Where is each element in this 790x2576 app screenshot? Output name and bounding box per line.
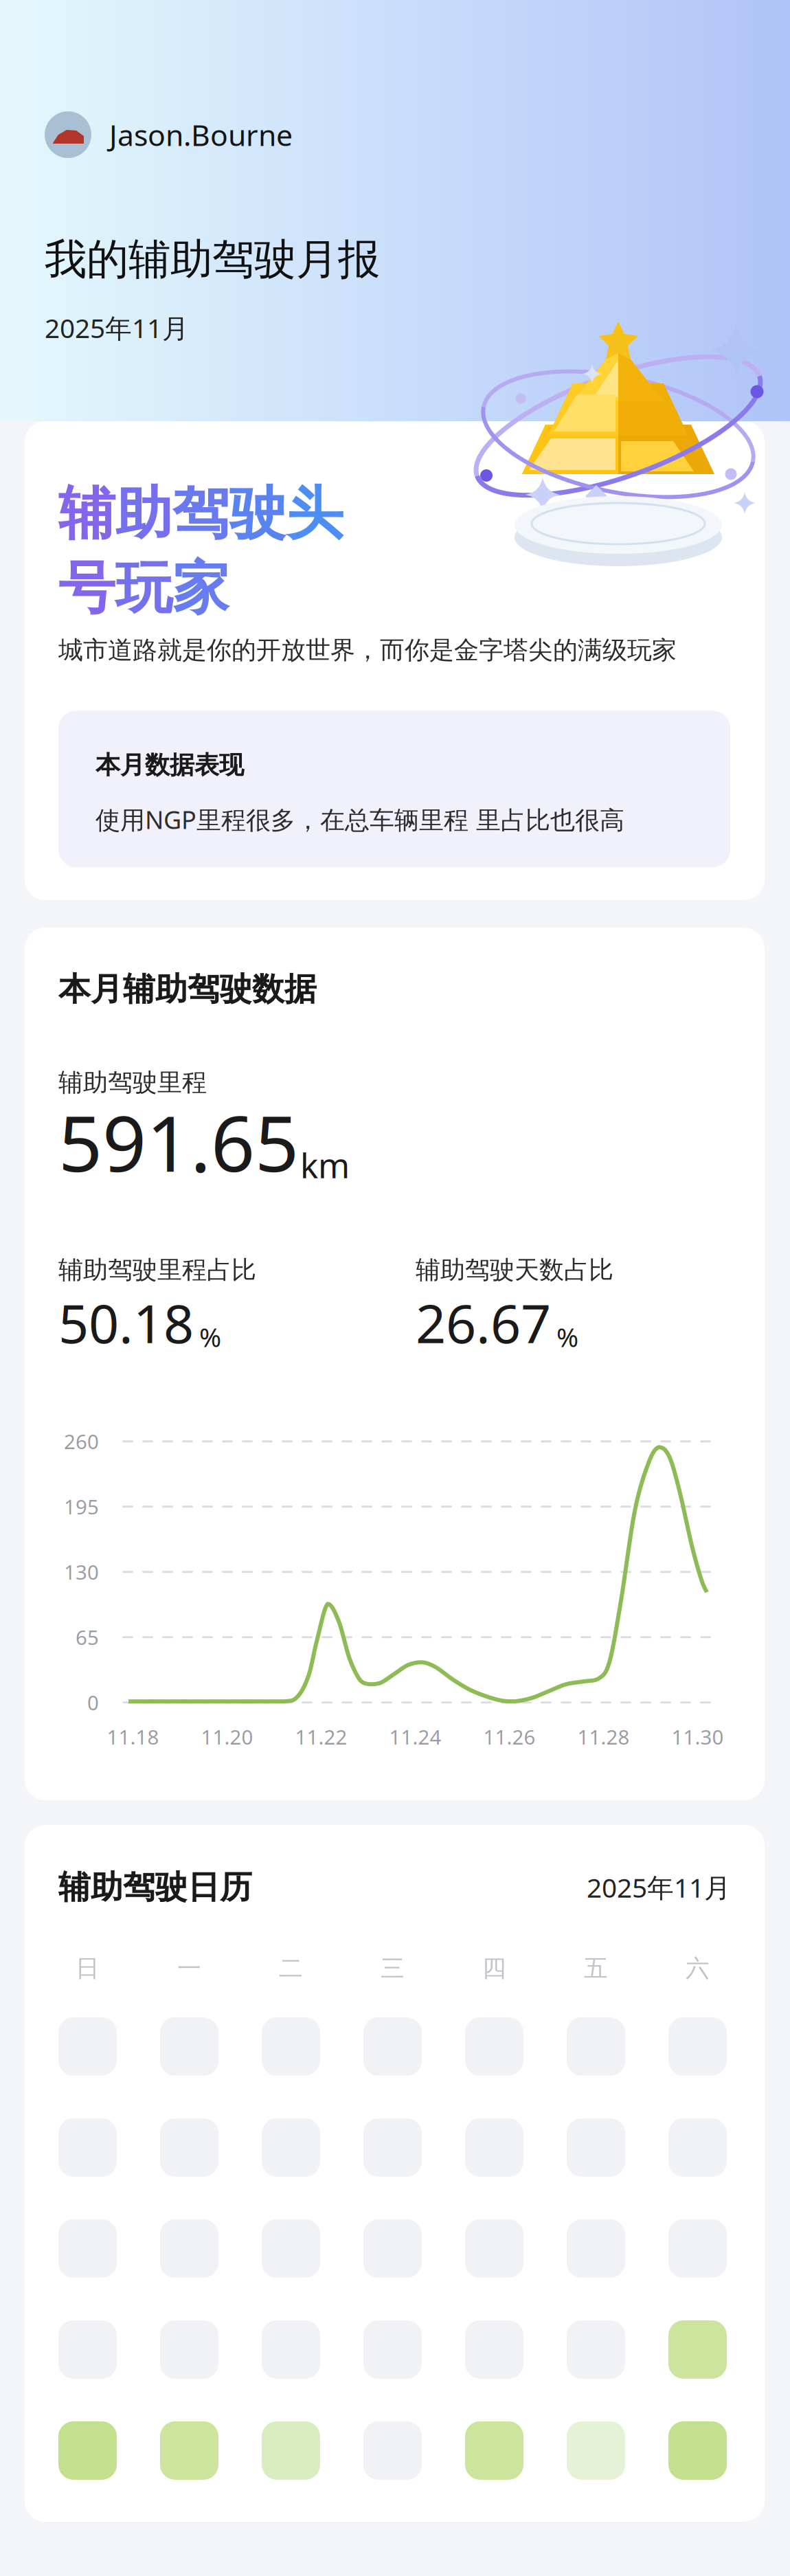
staticText: 城市道路就是你的开放世界，而你是金字塔尖的满级玩家 [58, 635, 677, 665]
staticText: 我的辅助驾驶月报 [45, 234, 380, 285]
staticText: 11.30 [671, 1723, 724, 1750]
staticText: 家 [172, 553, 229, 623]
staticText: 辅 [58, 479, 115, 549]
staticText: 驾 [172, 479, 229, 549]
staticText: 11.28 [577, 1723, 630, 1750]
staticText: 辅助驾驶天数占比 [416, 1255, 613, 1285]
staticText: 玩 [115, 553, 172, 623]
staticText: % [556, 1319, 578, 1354]
staticText: 195 [64, 1493, 99, 1520]
staticText: 0 [87, 1689, 99, 1716]
staticText: 日 [76, 1954, 100, 1983]
staticText: 辅助驾驶日历 [58, 1868, 252, 1907]
staticText: 使用NGP里程很多，在总车辆里程 里占比也很高 [95, 803, 624, 836]
staticText: 二 [279, 1954, 303, 1983]
staticText: 六 [686, 1954, 710, 1983]
staticText: 本月辅助驾驶数据 [58, 970, 317, 1009]
staticText: 驶 [229, 479, 286, 549]
staticText: 辅助驾驶里程占比 [58, 1255, 256, 1285]
staticText: 号 [58, 553, 115, 623]
staticText: 11.22 [295, 1723, 347, 1750]
staticText: 50.18 [58, 1287, 194, 1358]
staticText: 五 [584, 1954, 608, 1983]
staticText: 助 [115, 479, 172, 549]
staticText: 11.20 [201, 1723, 253, 1750]
staticText: 三 [381, 1954, 405, 1983]
staticText: 591.65 [58, 1091, 299, 1193]
staticText: Jason.Bourne [109, 115, 293, 154]
staticText: 11.26 [483, 1723, 535, 1750]
staticText: 65 [76, 1624, 99, 1651]
staticText: 本月数据表现 [95, 750, 244, 780]
staticText: 11.18 [107, 1723, 159, 1750]
staticText: 2025年11月 [45, 310, 189, 345]
staticText: 2025年11月 [587, 1870, 731, 1905]
staticText: 26.67 [416, 1287, 551, 1358]
staticText: 260 [64, 1428, 99, 1455]
staticText: 一 [177, 1954, 201, 1983]
staticText: km [300, 1143, 350, 1188]
staticText: 11.24 [389, 1723, 441, 1750]
staticText: 130 [64, 1559, 99, 1585]
button[interactable]: Jason.Bourne [45, 111, 293, 158]
staticText: 辅助驾驶里程 [58, 1067, 207, 1098]
staticText: 四 [482, 1954, 506, 1983]
staticText: % [199, 1319, 221, 1354]
staticText: 头 [286, 479, 343, 549]
